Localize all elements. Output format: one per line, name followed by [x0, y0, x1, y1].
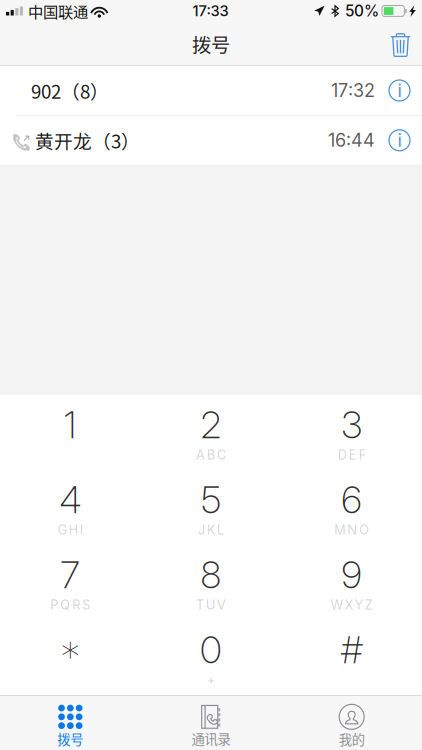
staticText: 黄开龙（3）: [35, 127, 140, 154]
button[interactable]: 5: [141, 470, 281, 545]
staticText: 9: [341, 552, 362, 597]
button[interactable]: 通讯录: [141, 695, 281, 750]
staticText: 8: [200, 552, 221, 597]
staticText: G H I: [58, 522, 83, 537]
staticText: 902（8）: [31, 77, 109, 104]
button[interactable]: 4: [0, 470, 141, 545]
staticText: i: [397, 80, 401, 101]
staticText: 3: [341, 402, 362, 447]
staticText: 5: [201, 477, 221, 522]
staticText: 0: [200, 627, 222, 672]
staticText: D E F: [338, 447, 366, 462]
staticText: i: [397, 129, 401, 151]
staticText: T U V: [196, 597, 226, 612]
staticText: J K L: [198, 522, 224, 537]
staticText: ∗: [59, 627, 82, 670]
button[interactable]: 黄开龙（3）: [0, 116, 422, 165]
button[interactable]: ∗: [0, 620, 141, 695]
staticText: M N O: [334, 522, 369, 537]
button[interactable]: 9: [281, 545, 422, 620]
staticText: 2: [200, 402, 221, 447]
button[interactable]: 7: [0, 545, 141, 620]
button[interactable]: Delete all: [378, 24, 422, 63]
button[interactable]: 我的: [281, 695, 422, 750]
button[interactable]: 6: [281, 470, 422, 545]
staticText: 4: [59, 477, 81, 522]
button[interactable]: 3: [281, 395, 422, 470]
staticText: 7: [60, 552, 80, 597]
button[interactable]: #: [281, 620, 422, 695]
staticText: A B C: [196, 447, 226, 462]
button[interactable]: 1: [0, 395, 141, 470]
button[interactable]: 8: [141, 545, 281, 620]
button[interactable]: 拨号: [0, 695, 141, 750]
staticText: 通讯录: [191, 729, 230, 748]
button[interactable]: 902（8）: [0, 66, 422, 115]
staticText: 17:32: [331, 80, 375, 101]
button[interactable]: 2: [141, 395, 281, 470]
button[interactable]: 0: [141, 620, 281, 695]
staticText: W X Y Z: [331, 597, 373, 612]
staticText: 拨号: [57, 729, 83, 748]
staticText: P Q R S: [50, 597, 90, 612]
staticText: 拨号: [192, 30, 230, 58]
staticText: 16:44: [328, 129, 375, 151]
button[interactable]: Call details: [375, 67, 422, 114]
staticText: 我的: [339, 729, 365, 749]
staticText: 1: [64, 402, 77, 447]
button[interactable]: Call details: [375, 117, 422, 164]
staticText: #: [341, 627, 363, 672]
staticText: 中国联通: [28, 0, 88, 22]
staticText: 17:33: [192, 2, 228, 20]
staticText: 50%: [345, 2, 379, 20]
staticText: +: [207, 672, 215, 687]
staticText: 6: [341, 477, 362, 522]
